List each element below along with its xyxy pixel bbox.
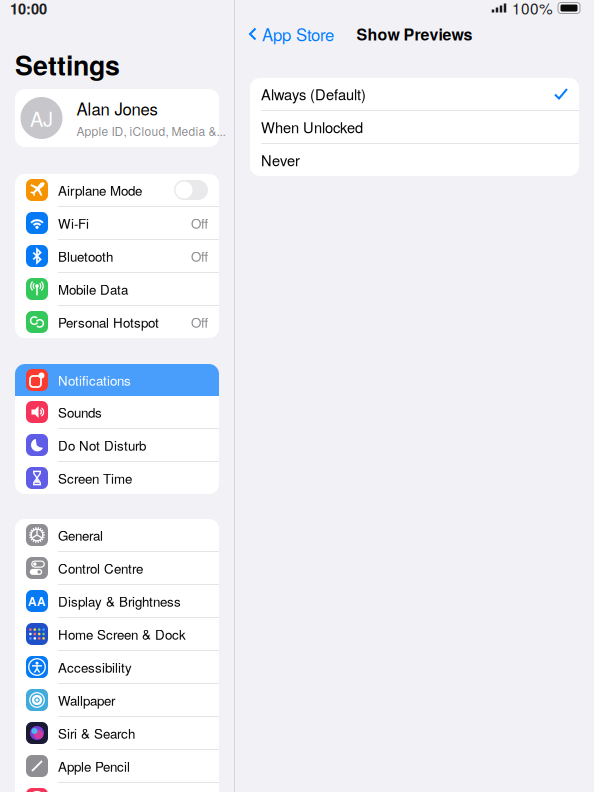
button[interactable]: Never	[250, 144, 579, 176]
button[interactable]: When Unlocked	[250, 111, 579, 143]
button[interactable]: Sounds	[15, 396, 219, 428]
button[interactable]: Airplane Mode	[15, 174, 219, 206]
button[interactable]: General	[15, 519, 219, 551]
button[interactable]: Home Screen & Dock	[15, 618, 219, 650]
staticText: Bluetooth	[58, 246, 113, 266]
button[interactable]: Siri & Search	[15, 717, 219, 749]
button[interactable]: Always (Default)	[250, 78, 579, 110]
button[interactable]: Accessibility	[15, 651, 219, 683]
staticText: Show Previews	[356, 22, 472, 45]
button[interactable]: Apple Pencil	[15, 750, 219, 782]
staticText: Never	[261, 149, 300, 170]
staticText: Display & Brightness	[58, 591, 181, 611]
staticText: Settings	[15, 45, 120, 84]
button[interactable]: Screen Time	[15, 462, 219, 494]
button[interactable]: Notifications	[15, 364, 219, 396]
staticText: Wallpaper	[58, 690, 115, 710]
button[interactable]: Personal Hotspot	[15, 306, 219, 338]
staticText: Accessibility	[58, 657, 132, 677]
button[interactable]: Control Centre	[15, 552, 219, 584]
staticText: 10:00	[10, 0, 47, 19]
button[interactable]: Touch ID & Passcode	[15, 783, 219, 792]
button[interactable]: App Store	[235, 16, 345, 52]
staticText: Mobile Data	[58, 279, 128, 299]
staticText: Off	[191, 213, 208, 233]
staticText: Apple ID, iCloud, Media &...	[76, 122, 225, 139]
staticText: General	[58, 525, 103, 545]
staticText: Apple Pencil	[58, 756, 130, 776]
button[interactable]: Mobile Data	[15, 273, 219, 305]
button[interactable]: Do Not Disturb	[15, 429, 219, 461]
button[interactable]: AA	[15, 585, 219, 617]
staticText: Always (Default)	[261, 83, 366, 104]
staticText: 100%	[512, 0, 553, 19]
staticText: Wi-Fi	[58, 213, 89, 233]
staticText: Home Screen & Dock	[58, 624, 186, 644]
staticText: Personal Hotspot	[58, 312, 159, 332]
staticText: Screen Time	[58, 468, 132, 488]
staticText: Off	[191, 312, 208, 332]
staticText: Do Not Disturb	[58, 435, 146, 455]
button[interactable]: Wallpaper	[15, 684, 219, 716]
staticText: AA	[28, 592, 46, 610]
staticText: Siri & Search	[58, 723, 135, 743]
staticText: Airplane Mode	[58, 180, 142, 200]
staticText: AJ	[30, 104, 53, 132]
staticText: When Unlocked	[261, 116, 363, 137]
button[interactable]: AJ	[15, 89, 219, 147]
staticText: Notifications	[58, 370, 131, 390]
staticText: Control Centre	[58, 558, 143, 578]
staticText: Sounds	[58, 402, 102, 422]
staticText: App Store	[262, 22, 334, 46]
staticText: Alan Jones	[76, 96, 157, 120]
button[interactable]: Wi-Fi	[15, 207, 219, 239]
button[interactable]: Bluetooth	[15, 240, 219, 272]
staticText: Off	[191, 246, 208, 266]
